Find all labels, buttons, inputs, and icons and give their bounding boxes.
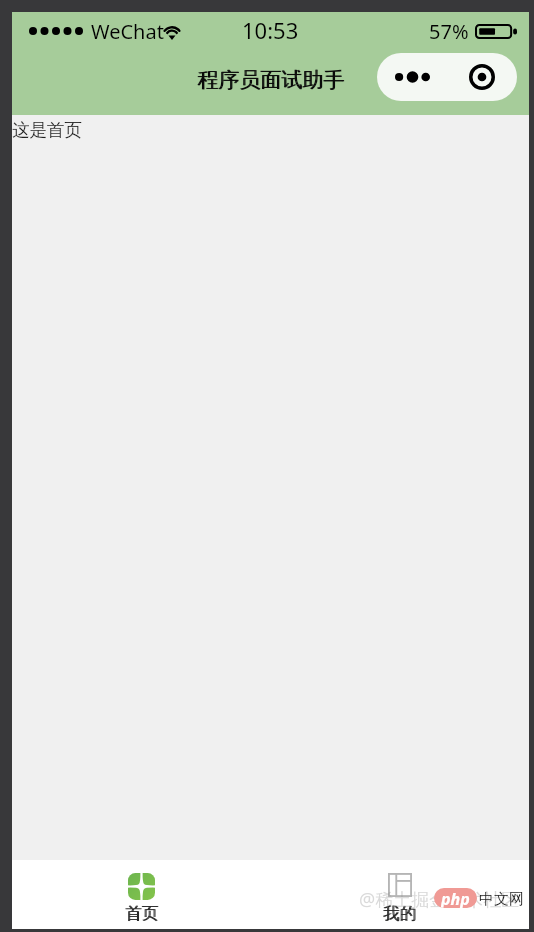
staticText: 我的 xyxy=(384,903,417,924)
staticText: @稀土掘金技术社区 xyxy=(359,887,520,912)
staticText: 我的 xyxy=(383,903,416,924)
staticText: WeChat xyxy=(91,18,164,45)
button[interactable]: 我的 xyxy=(270,860,529,929)
button[interactable]: More options xyxy=(377,53,517,101)
other: Close mini program xyxy=(469,64,495,90)
staticText: 10:53 xyxy=(242,15,299,45)
staticText: 中文网 xyxy=(479,890,524,909)
staticText: 程序员面试助手 xyxy=(198,67,345,93)
staticText: 程序员面试助手 xyxy=(197,67,344,93)
staticText: 这是首页 xyxy=(12,119,82,141)
staticText: 57% xyxy=(429,18,469,45)
button[interactable]: 首页 xyxy=(12,860,270,929)
other: More options xyxy=(395,71,430,83)
staticText: 首页 xyxy=(126,903,159,924)
staticText: 首页 xyxy=(125,903,158,924)
staticText: php xyxy=(441,888,470,908)
